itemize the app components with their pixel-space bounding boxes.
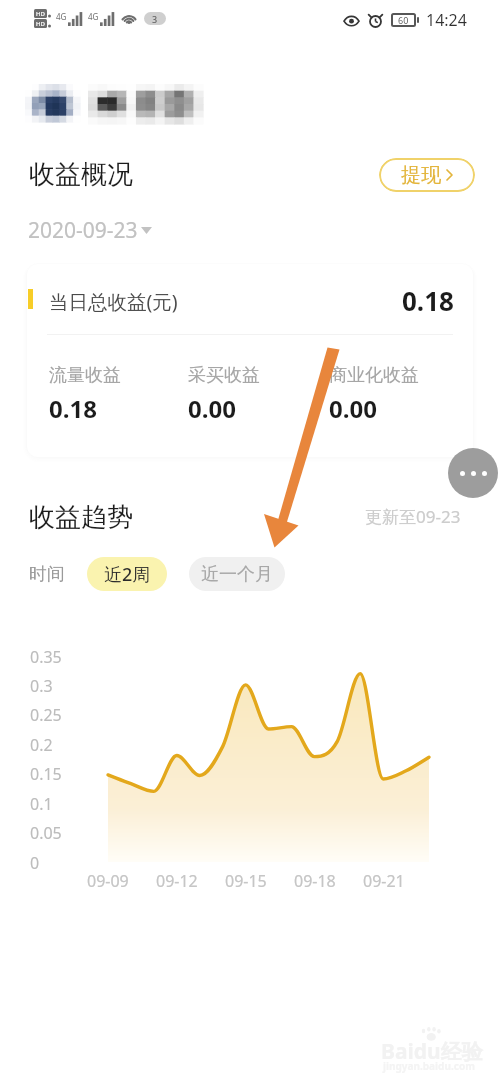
staticText: 0.00 bbox=[329, 392, 377, 425]
staticText: 09-12 bbox=[156, 870, 198, 892]
staticText: 时间 bbox=[29, 563, 65, 586]
staticText: 商业化收益 bbox=[329, 364, 419, 387]
button[interactable]: 近2周 bbox=[87, 557, 167, 591]
staticText: 0.15 bbox=[30, 763, 62, 785]
button[interactable]: 提现 bbox=[379, 158, 475, 192]
button[interactable]: 2020-09-23 bbox=[28, 216, 152, 245]
staticText: 0.00 bbox=[188, 392, 236, 425]
staticText: HD bbox=[36, 10, 45, 18]
staticText: Baidu经验 bbox=[381, 1037, 483, 1066]
staticText: 提现 bbox=[401, 163, 441, 188]
staticText: 0 bbox=[30, 852, 40, 874]
staticText: 近一个月 bbox=[201, 563, 273, 586]
staticText: 60 bbox=[398, 14, 409, 26]
staticText: 0.18 bbox=[49, 392, 97, 425]
staticText: 09-18 bbox=[294, 870, 336, 892]
staticText: 2020-09-23 bbox=[28, 216, 138, 245]
staticText: 0.1 bbox=[30, 793, 53, 815]
staticText: 0.35 bbox=[30, 646, 62, 668]
staticText: 流量收益 bbox=[49, 364, 121, 387]
staticText: 0.05 bbox=[30, 822, 62, 844]
staticText: 0.2 bbox=[30, 734, 53, 756]
staticText: jingyan.baidu.com bbox=[383, 1059, 475, 1073]
staticText: 4G bbox=[56, 11, 67, 22]
staticText: 0.25 bbox=[30, 704, 62, 726]
staticText: 采买收益 bbox=[188, 364, 260, 387]
staticText: 14:24 bbox=[426, 9, 467, 31]
staticText: 09-15 bbox=[225, 870, 267, 892]
staticText: 4G bbox=[88, 11, 99, 22]
button[interactable]: More options bbox=[448, 448, 498, 498]
staticText: HD bbox=[36, 20, 45, 28]
staticText: 3 bbox=[152, 13, 158, 25]
staticText: 收益概况 bbox=[29, 158, 133, 191]
staticText: 收益趋势 bbox=[29, 501, 133, 534]
staticText: 当日总收益(元) bbox=[49, 288, 178, 315]
staticText: 更新至09-23 bbox=[365, 505, 461, 528]
staticText: 09-21 bbox=[363, 870, 405, 892]
staticText: 0.18 bbox=[402, 283, 454, 318]
staticText: 0.3 bbox=[30, 675, 53, 697]
staticText: 09-09 bbox=[87, 870, 129, 892]
button[interactable]: 近一个月 bbox=[189, 557, 285, 591]
staticText: 近2周 bbox=[104, 562, 151, 587]
